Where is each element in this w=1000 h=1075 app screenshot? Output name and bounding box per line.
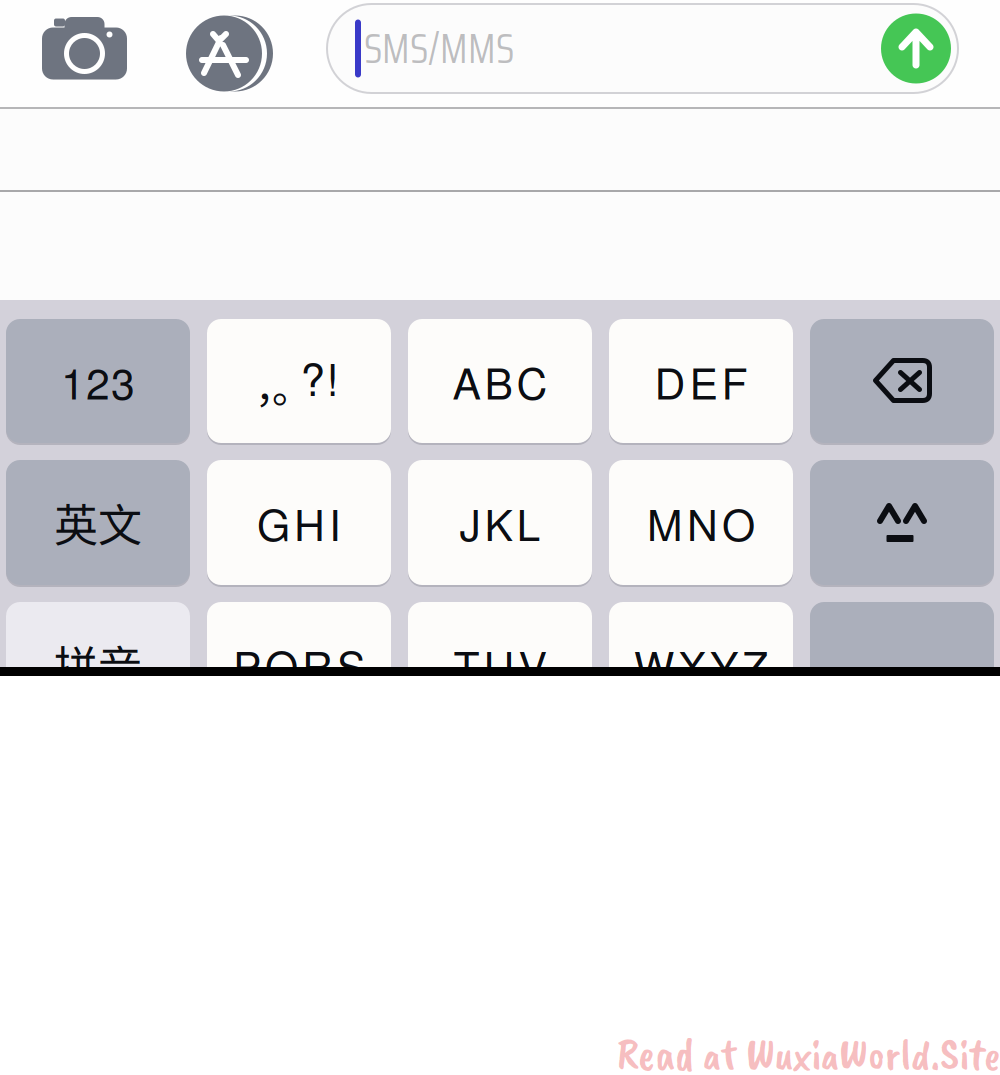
staticText: Read at WuxiaWorld.Site: [617, 1027, 1000, 1075]
button[interactable]: 拼音: [6, 602, 190, 727]
button[interactable]: Take photo: [35, 10, 134, 96]
button[interactable]: 123: [6, 319, 190, 443]
staticText: ?: [300, 345, 324, 408]
button[interactable]: App Store: [178, 9, 270, 97]
button[interactable]: ，: [207, 319, 391, 443]
button[interactable]: TUV: [408, 602, 592, 727]
button[interactable]: JKL: [408, 460, 592, 585]
staticText: !: [326, 345, 338, 408]
button[interactable]: 英文: [6, 460, 190, 585]
staticText: ABC: [452, 350, 547, 412]
button[interactable]: DEF: [609, 319, 793, 443]
staticText: SMS/MMS: [364, 16, 514, 81]
button[interactable]: MNO: [609, 460, 793, 585]
button[interactable]: PQRS: [207, 602, 391, 727]
button[interactable]: [810, 319, 994, 443]
button[interactable]: Send: [881, 13, 951, 83]
staticText: JKL: [459, 492, 540, 553]
staticText: 123: [61, 350, 135, 412]
staticText: ，: [255, 356, 295, 414]
staticText: DEF: [654, 350, 747, 412]
button[interactable]: [810, 602, 994, 727]
staticText: PQRS: [233, 634, 365, 695]
staticText: TUV: [453, 634, 546, 695]
staticText: 。: [272, 356, 312, 414]
staticText: GHI: [257, 492, 341, 553]
staticText: MNO: [647, 492, 755, 553]
button[interactable]: ABC: [408, 319, 592, 443]
button[interactable]: [810, 460, 994, 585]
staticText: 英文: [54, 491, 142, 554]
staticText: WXYZ: [634, 634, 768, 695]
button[interactable]: WXYZ: [609, 602, 793, 727]
staticText: 拼音: [54, 633, 142, 696]
button[interactable]: GHI: [207, 460, 391, 585]
